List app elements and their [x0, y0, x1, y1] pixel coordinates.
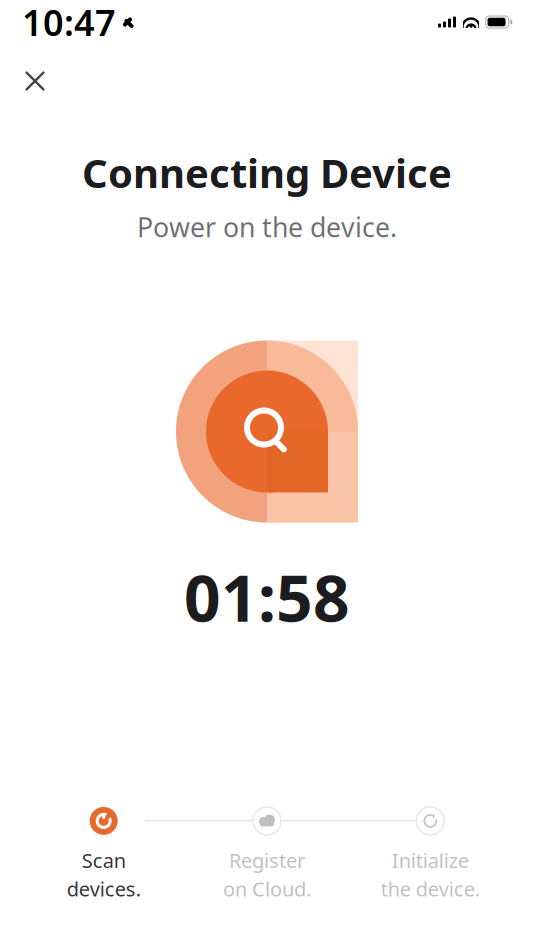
- staticText: Power on the device.: [137, 209, 397, 244]
- staticText: on Cloud.: [223, 875, 311, 902]
- staticText: Connecting Device: [82, 146, 452, 199]
- button[interactable]: Close: [0, 58, 60, 104]
- staticText: devices.: [67, 875, 141, 902]
- staticText: the device.: [381, 875, 480, 902]
- staticText: 10:47: [22, 0, 116, 46]
- staticText: Register: [229, 847, 305, 873]
- staticText: Initialize: [392, 847, 469, 873]
- staticText: Scan: [82, 847, 126, 873]
- staticText: 01:58: [184, 554, 350, 639]
